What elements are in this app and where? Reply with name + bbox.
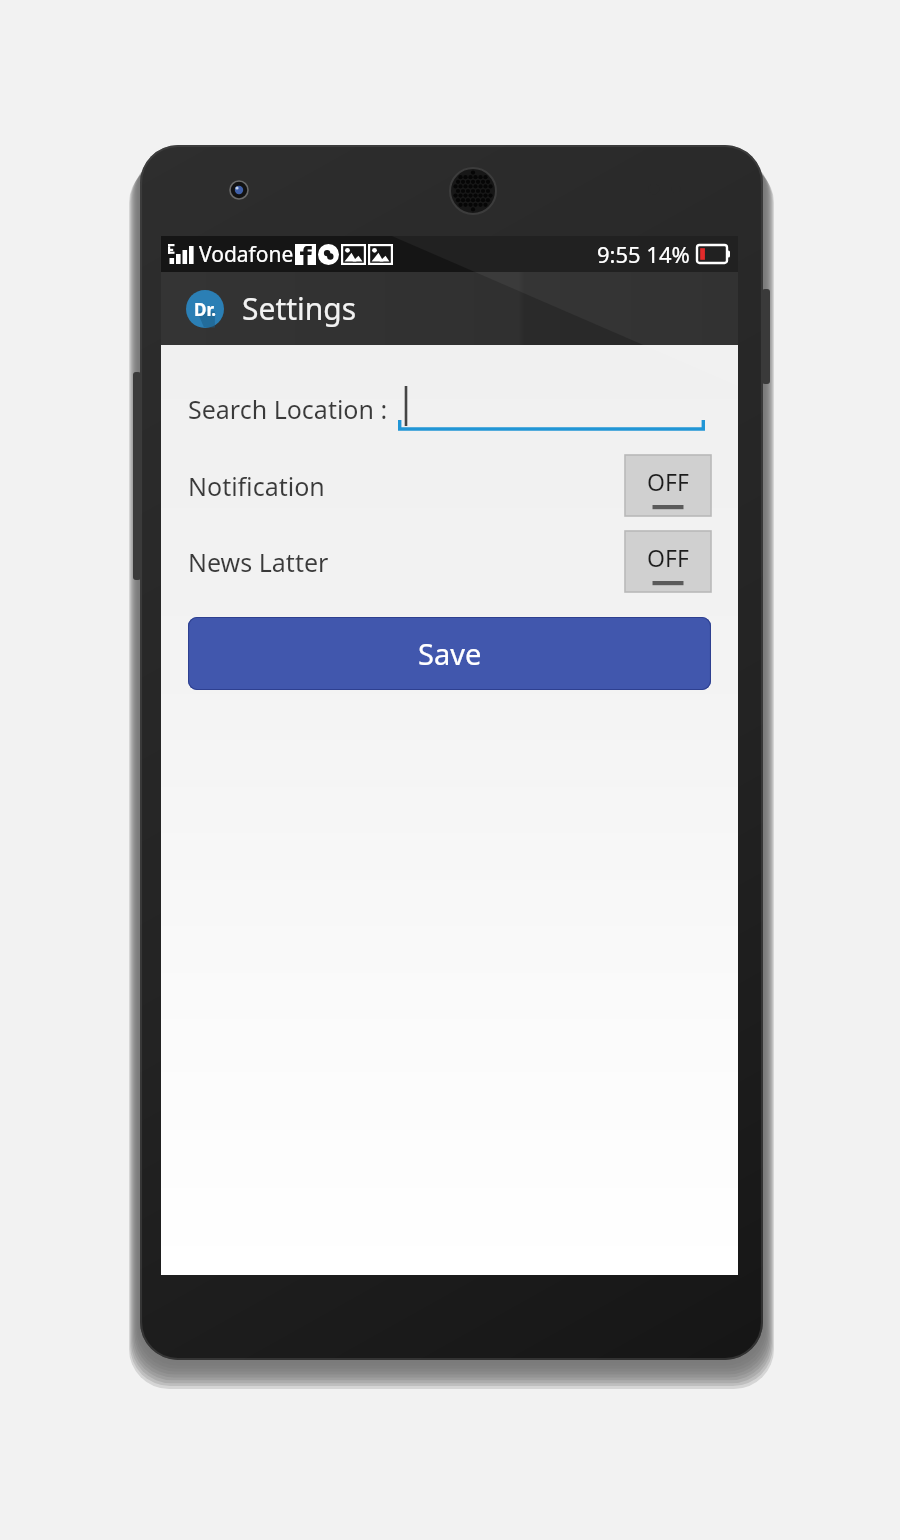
staticText: OFF xyxy=(647,542,689,573)
staticText: Vodafone xyxy=(199,240,294,269)
staticText: Notification xyxy=(188,469,325,503)
button[interactable]: Save xyxy=(188,617,711,690)
staticText: News Latter xyxy=(188,545,329,579)
button[interactable]: OFF xyxy=(625,531,711,592)
staticText: Search Location : xyxy=(188,392,388,426)
button[interactable] xyxy=(398,383,705,435)
staticText: OFF xyxy=(647,466,689,497)
staticText: Save xyxy=(418,634,482,673)
staticText: Settings xyxy=(242,288,357,329)
staticText: 9:55 14% xyxy=(597,239,690,269)
button[interactable]: OFF xyxy=(625,455,711,516)
staticText: Dr. xyxy=(194,298,217,321)
